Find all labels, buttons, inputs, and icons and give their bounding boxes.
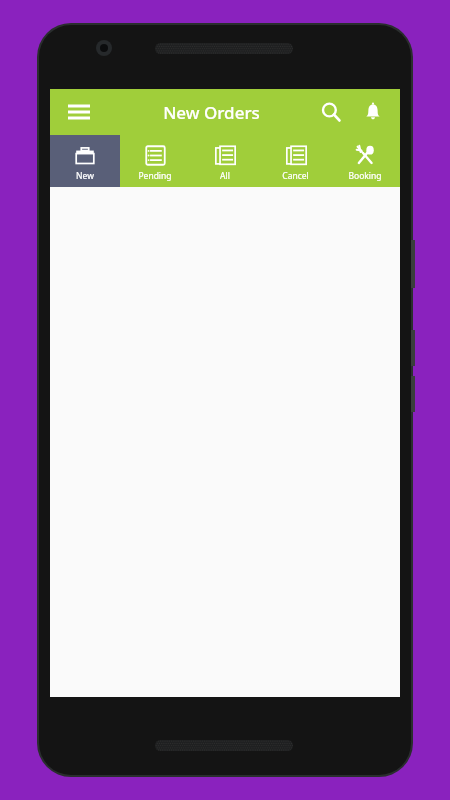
button[interactable]: Notifications	[356, 95, 390, 129]
staticText: New Orders	[163, 101, 260, 124]
button[interactable]: All	[190, 135, 260, 187]
button[interactable]: Open navigation menu	[62, 95, 96, 129]
staticText: Booking	[348, 170, 382, 182]
button[interactable]: New	[50, 135, 120, 187]
staticText: Cancel	[282, 170, 309, 182]
button[interactable]: Pending	[120, 135, 190, 187]
button[interactable]: Cancel	[260, 135, 330, 187]
staticText: New	[76, 170, 94, 182]
button[interactable]: Booking	[330, 135, 400, 187]
staticText: Pending	[138, 170, 172, 182]
button[interactable]: Search	[314, 95, 348, 129]
staticText: All	[220, 170, 230, 182]
